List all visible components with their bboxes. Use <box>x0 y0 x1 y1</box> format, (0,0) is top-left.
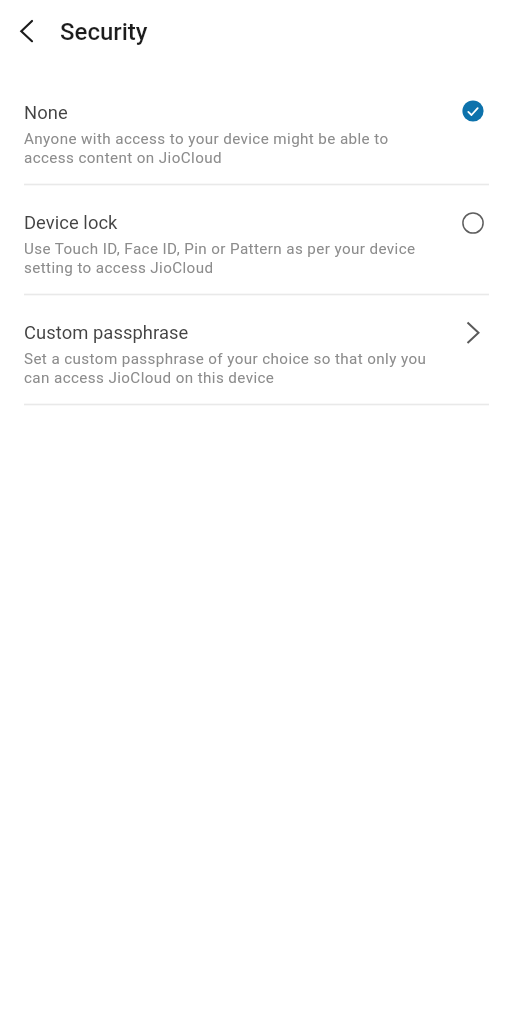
staticText: Set a custom passphrase of your choice s… <box>24 350 427 387</box>
staticText: None <box>24 102 68 124</box>
button[interactable]: None <box>0 91 513 201</box>
button[interactable]: Custom passphrase <box>0 311 513 421</box>
staticText: Custom passphrase <box>24 322 189 344</box>
button[interactable]: Not selected <box>462 212 484 234</box>
button[interactable]: Navigate up <box>7 11 47 51</box>
staticText: Security <box>60 18 148 46</box>
button[interactable]: Selected <box>462 100 484 122</box>
staticText: Use Touch ID, Face ID, Pin or Pattern as… <box>24 240 416 277</box>
staticText: Anyone with access to your device might … <box>24 130 389 167</box>
staticText: Device lock <box>24 212 118 234</box>
button[interactable]: Open <box>462 322 484 344</box>
button[interactable]: Device lock <box>0 201 513 311</box>
